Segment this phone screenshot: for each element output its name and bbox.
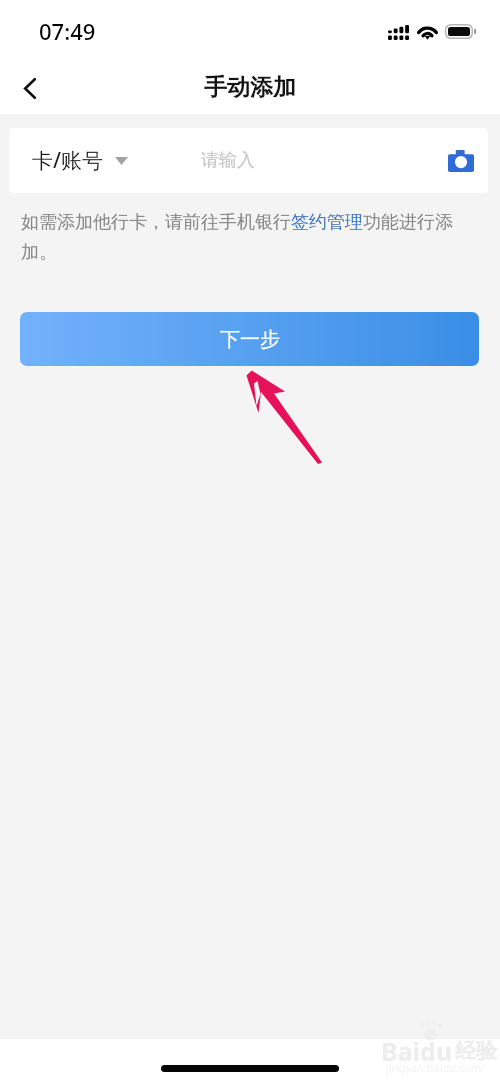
staticText: jingyan.baidu.com: [386, 1060, 482, 1075]
staticText: 经验: [455, 1038, 497, 1064]
staticText: 07:49: [39, 16, 96, 46]
button[interactable]: Scan card: [432, 134, 488, 188]
button[interactable]: 卡/账号: [9, 132, 142, 189]
button[interactable]: Back: [4, 62, 56, 114]
button[interactable]: 下一步: [20, 312, 479, 366]
staticText: 下一步: [220, 327, 280, 352]
staticText: 请输入: [201, 149, 255, 172]
staticText: 手动添加: [204, 73, 296, 102]
button[interactable]: 签约管理: [290, 210, 363, 233]
staticText: 如需添加他行卡，请前往手机银行签约管理功能进行添加。: [21, 211, 478, 263]
staticText: 卡/账号: [32, 146, 104, 175]
staticText: Baidu: [381, 1034, 453, 1068]
